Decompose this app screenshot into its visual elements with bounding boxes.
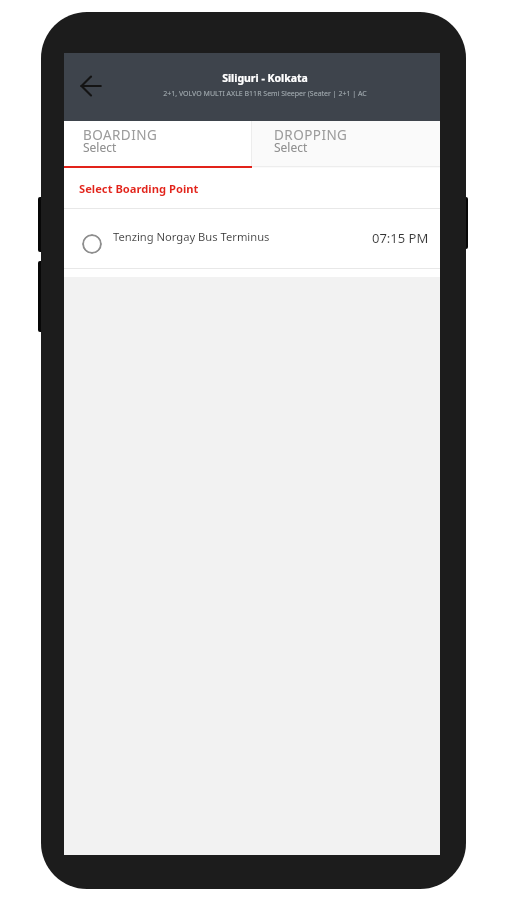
staticText: DROPPING	[274, 126, 348, 144]
staticText: BOARDING	[83, 126, 158, 144]
staticText: Select Boarding Point	[79, 181, 199, 196]
button[interactable]: Tenzing Norgay Bus Terminus	[64, 209, 440, 268]
staticText: Select	[83, 139, 117, 155]
button[interactable]: Back	[73, 68, 109, 104]
button[interactable]: DROPPING	[252, 121, 440, 168]
button[interactable]: BOARDING	[64, 121, 251, 168]
staticText: 2+1, VOLVO MULTI AXLE B11R Semi Sleeper …	[163, 89, 367, 99]
staticText: Tenzing Norgay Bus Terminus	[113, 229, 270, 244]
staticText: 07:15 PM	[372, 229, 429, 247]
staticText: Siliguri - Kolkata	[222, 71, 308, 85]
staticText: Select	[274, 139, 308, 155]
